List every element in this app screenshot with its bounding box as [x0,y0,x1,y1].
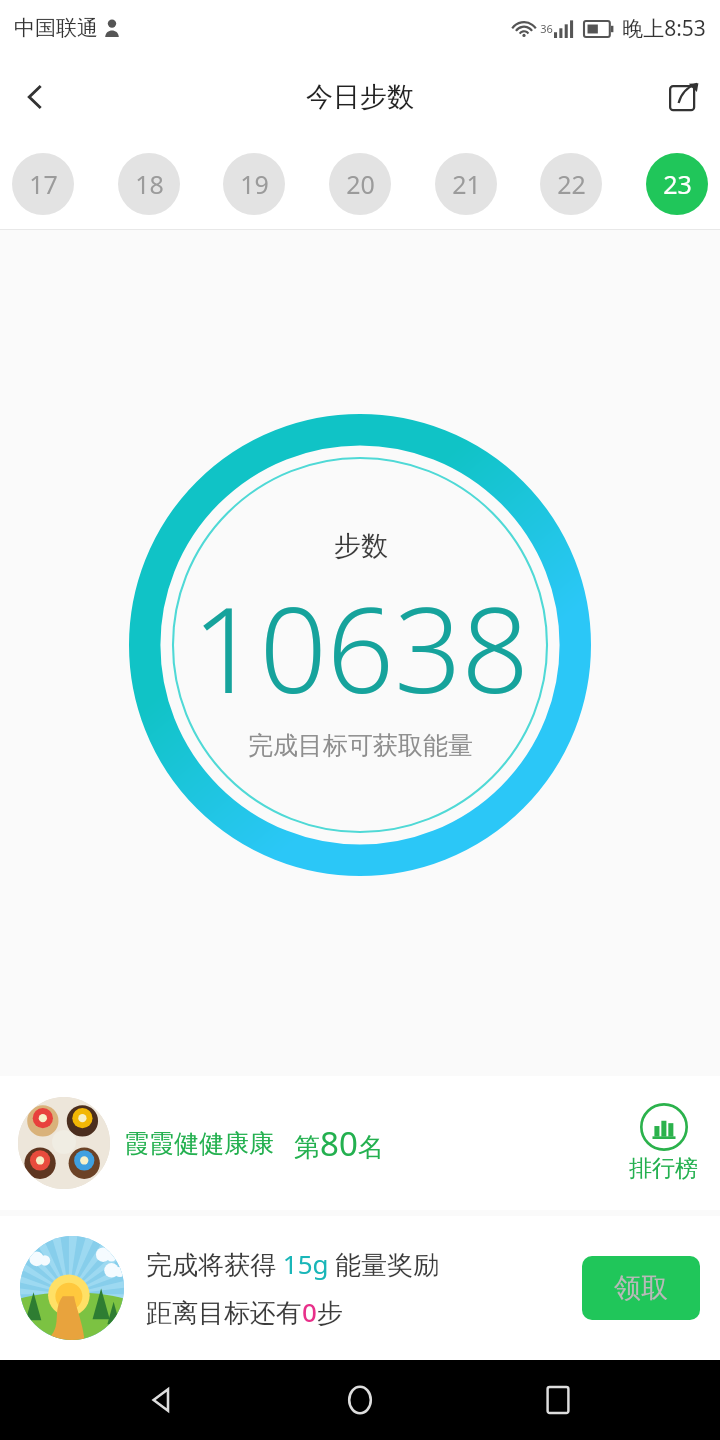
staticText: 36 [540,21,553,36]
button[interactable]: Back [126,1364,198,1436]
staticText: 21 [452,167,481,201]
button[interactable]: 22 [540,153,602,215]
staticText: 领取 [614,1271,668,1305]
button[interactable]: 霞霞健健康康 [0,1076,720,1210]
button[interactable]: 23 [646,153,708,215]
staticText: 完成将获得 15g 能量奖励 [146,1246,440,1282]
staticText: 20 [346,167,375,201]
button[interactable]: 18 [118,153,180,215]
staticText: 10638 [192,567,529,728]
staticText: 晚上8:53 [622,14,706,43]
button[interactable]: 17 [12,153,74,215]
staticText: 排行榜 [629,1154,698,1183]
staticText: 第80名 [294,1121,384,1166]
button[interactable]: 19 [223,153,285,215]
staticText: 霞霞健健康康 [124,1128,274,1159]
staticText: 距离目标还有0步 [146,1294,343,1330]
staticText: 步数 [334,529,388,563]
button[interactable]: Home [324,1364,396,1436]
staticText: 19 [240,167,269,201]
staticText: 18 [135,167,164,201]
staticText: 完成目标可获取能量 [248,730,473,761]
staticText: 今日步数 [306,80,414,114]
staticText: 22 [557,167,586,201]
button[interactable]: 领取 [582,1256,700,1320]
button[interactable]: Recent apps [522,1364,594,1436]
staticText: 17 [29,167,58,201]
staticText: 中国联通 [14,15,98,41]
button[interactable]: 20 [329,153,391,215]
staticText: 23 [663,167,692,201]
button[interactable]: 21 [435,153,497,215]
button[interactable]: Share [648,61,720,133]
button[interactable]: 排行榜 [625,1103,702,1183]
button[interactable]: Back [0,61,72,133]
